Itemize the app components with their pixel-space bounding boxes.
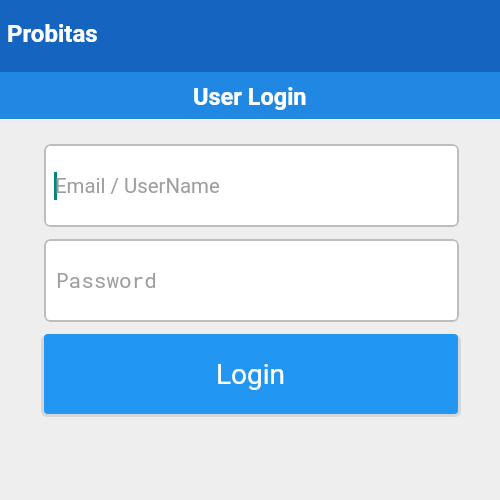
button[interactable]: Password input field [44, 239, 459, 322]
staticText: Email / UserName [55, 174, 220, 198]
button[interactable]: Login [44, 334, 458, 414]
staticText: User Login [193, 83, 307, 111]
staticText: Probitas [7, 20, 98, 48]
staticText: Password [56, 266, 157, 294]
staticText: Login [216, 358, 286, 391]
button[interactable]: Email / UserName input field [44, 144, 459, 227]
